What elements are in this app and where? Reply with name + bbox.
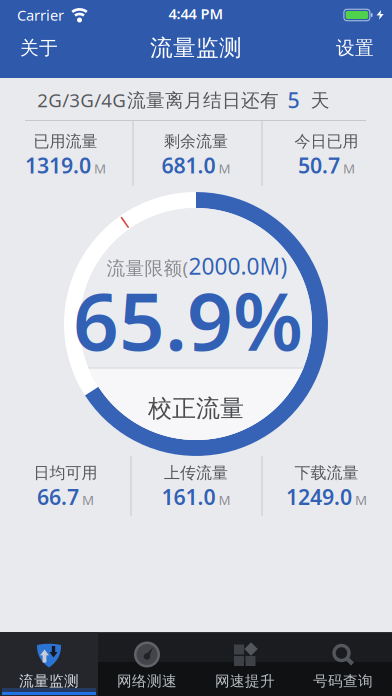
staticText: Carrier [17, 5, 64, 25]
staticText: M [94, 160, 106, 177]
staticText: 1319.0 [25, 151, 91, 179]
staticText: M [82, 491, 94, 509]
button[interactable]: 网络测速 [98, 632, 196, 696]
button[interactable]: 关于 [11, 28, 67, 72]
staticText: 设置 [336, 36, 374, 59]
staticText: M [343, 160, 355, 177]
staticText: 天 [311, 89, 330, 112]
staticText: M [218, 491, 230, 509]
staticText: 2000.0M) [188, 251, 287, 281]
button[interactable]: 流量监测 [0, 632, 98, 696]
staticText: 1249.0 [286, 483, 352, 511]
staticText: 4:44 PM [168, 4, 223, 23]
staticText: M [218, 160, 230, 177]
staticText: 上传流量 [164, 463, 228, 483]
staticText: 校正流量 [148, 394, 244, 423]
staticText: 网速提升 [215, 672, 275, 690]
staticText: 网络测速 [117, 672, 177, 690]
staticText: 2G/3G/4G [37, 88, 126, 112]
staticText: 日均可用 [33, 463, 97, 483]
staticText: 今日已用 [294, 131, 358, 151]
staticText: 5 [287, 86, 299, 114]
button[interactable]: 校正流量 [88, 367, 303, 440]
button[interactable]: 号码查询 [294, 632, 392, 696]
staticText: 流量限额( [106, 255, 188, 280]
button[interactable]: 设置 [327, 28, 383, 72]
button[interactable]: 网速提升 [196, 632, 294, 696]
staticText: 已用流量 [33, 131, 97, 151]
staticText: M [355, 491, 367, 509]
staticText: 号码查询 [313, 672, 373, 690]
staticText: 流量离月结日还有 [127, 89, 279, 112]
staticText: 66.7 [37, 483, 79, 511]
staticText: 下载流量 [294, 463, 358, 483]
staticText: 流量监测 [19, 672, 79, 690]
staticText: 剩余流量 [164, 131, 228, 151]
staticText: 50.7 [298, 151, 340, 179]
staticText: 161.0 [161, 483, 215, 511]
staticText: 681.0 [161, 151, 215, 179]
staticText: 65.9% [73, 266, 303, 373]
staticText: 关于 [20, 36, 58, 59]
staticText: 流量监测 [150, 34, 242, 62]
